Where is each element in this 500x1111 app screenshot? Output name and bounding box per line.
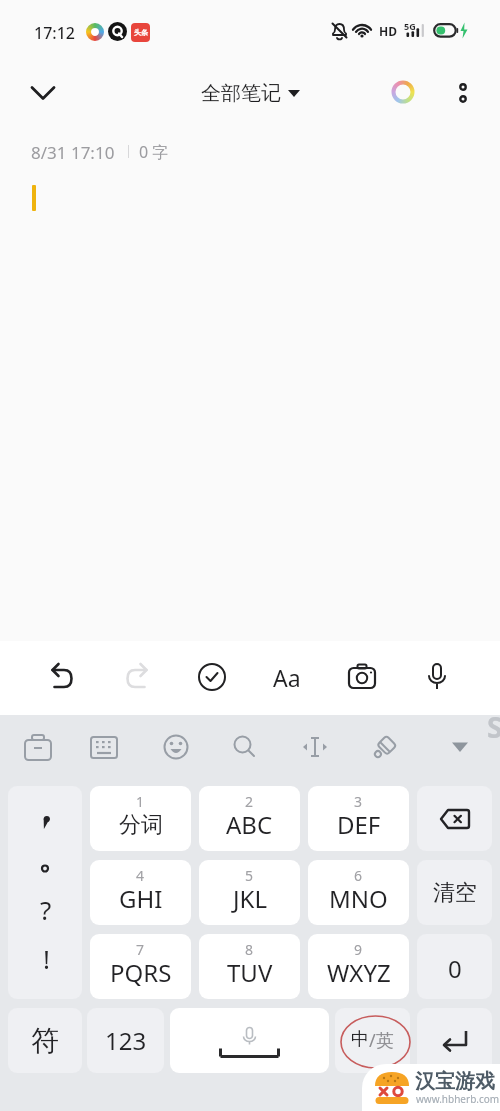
button[interactable] <box>417 786 492 851</box>
button[interactable] <box>158 729 194 765</box>
staticText: 2 <box>245 792 254 811</box>
button[interactable] <box>392 81 414 103</box>
staticText: ? <box>40 892 52 927</box>
staticText: 中 <box>351 1028 369 1051</box>
button[interactable]: Aa <box>263 657 311 697</box>
staticText: ABC <box>226 808 273 841</box>
staticText: 分词 <box>119 811 163 839</box>
button[interactable]: 清空 <box>417 860 492 925</box>
button[interactable]: 2 <box>199 786 300 851</box>
staticText: 8/31 17:10 <box>31 141 115 164</box>
staticText: S <box>487 708 500 746</box>
button[interactable]: 5 <box>199 860 300 925</box>
staticText: 8 <box>245 940 254 959</box>
button[interactable]: 全部笔记 <box>0 62 500 124</box>
button[interactable]: 7 <box>90 934 191 999</box>
button[interactable] <box>417 657 457 697</box>
staticText: WXYZ <box>327 956 391 989</box>
staticText: Aa <box>273 662 301 693</box>
button[interactable]: 0 <box>417 934 492 999</box>
staticText: MNO <box>329 882 388 915</box>
staticText: 5G <box>404 20 416 32</box>
staticText: 123 <box>105 1024 147 1057</box>
button[interactable] <box>42 657 82 697</box>
button[interactable] <box>108 22 127 41</box>
button[interactable]: 中 <box>335 1008 410 1073</box>
staticText: 符 <box>31 1023 59 1058</box>
button[interactable] <box>367 729 403 765</box>
button[interactable] <box>86 729 122 765</box>
staticText: 0 <box>448 952 462 985</box>
button[interactable]: 3 <box>308 786 409 851</box>
staticText: TUV <box>227 956 273 989</box>
button[interactable] <box>117 657 157 697</box>
button[interactable]: 123 <box>87 1008 164 1073</box>
staticText: 头条 <box>134 28 148 37</box>
staticText: 汉宝游戏 <box>415 1069 495 1094</box>
button[interactable] <box>170 1008 329 1073</box>
button[interactable] <box>417 1008 492 1073</box>
button[interactable]: 9 <box>308 934 409 999</box>
staticText: ! <box>43 941 50 976</box>
button[interactable]: 8 <box>199 934 300 999</box>
button[interactable]: ? <box>8 786 82 999</box>
staticText: 1 <box>136 792 145 811</box>
button[interactable]: 1 <box>90 786 191 851</box>
staticText: 9 <box>354 940 363 959</box>
button[interactable] <box>342 657 382 697</box>
staticText: PQRS <box>110 956 172 989</box>
button[interactable] <box>20 729 56 765</box>
button[interactable] <box>448 74 478 112</box>
button[interactable] <box>442 729 478 765</box>
staticText: GHI <box>119 882 163 915</box>
staticText: /英 <box>369 1028 394 1053</box>
staticText: 5 <box>245 866 254 885</box>
button[interactable] <box>297 729 333 765</box>
button[interactable]: 4 <box>90 860 191 925</box>
button[interactable] <box>192 657 232 697</box>
staticText: 0 字 <box>139 141 169 163</box>
staticText: 4 <box>136 866 145 885</box>
button[interactable] <box>227 729 263 765</box>
button[interactable]: 头条 <box>131 23 150 42</box>
button[interactable]: 6 <box>308 860 409 925</box>
staticText: 清空 <box>433 879 477 907</box>
staticText: www.hbherb.com <box>416 1092 500 1106</box>
staticText: 7 <box>136 940 145 959</box>
staticText: 17:12 <box>34 22 75 44</box>
button[interactable] <box>24 74 62 112</box>
staticText: DEF <box>337 808 381 841</box>
staticText: 3 <box>354 792 363 811</box>
button[interactable] <box>86 23 104 41</box>
button[interactable]: 符 <box>8 1008 82 1073</box>
staticText: HD <box>379 23 397 39</box>
staticText: 全部笔记 <box>201 81 281 106</box>
staticText: 6 <box>354 866 363 885</box>
staticText: JKL <box>233 882 267 915</box>
